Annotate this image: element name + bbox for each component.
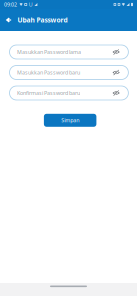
staticText: Masukkan Password baru — [17, 69, 80, 76]
staticText: Simpan — [61, 117, 79, 124]
button[interactable]: Konfirmasi Password baru — [9, 86, 128, 100]
staticText: Ubah Password — [17, 16, 67, 24]
staticText: U — [29, 1, 33, 8]
button[interactable]: Simpan — [44, 114, 96, 127]
staticText: 09:02 — [4, 1, 17, 8]
button[interactable]: Masukkan Password baru — [9, 65, 128, 79]
button[interactable]: Back — [2, 9, 15, 31]
staticText: Masukkan Password lama — [17, 48, 81, 56]
button[interactable]: Masukkan Password lama — [9, 45, 128, 59]
staticText: Konfirmasi Password baru — [17, 89, 80, 97]
